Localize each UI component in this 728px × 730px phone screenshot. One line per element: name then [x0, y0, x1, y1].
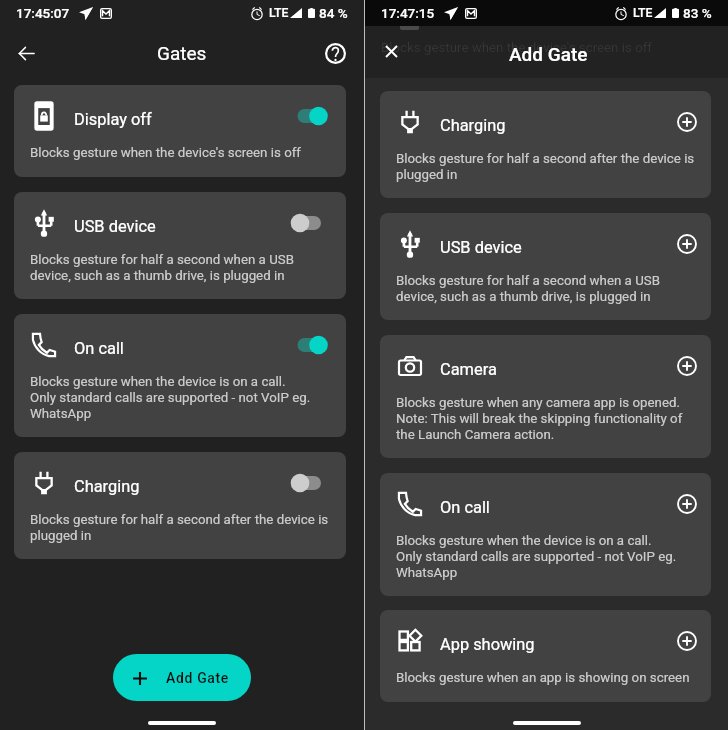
button[interactable]: USB device — [292, 213, 332, 233]
button[interactable]: Charging — [292, 473, 332, 493]
button[interactable]: Add Charging — [677, 112, 697, 132]
staticText: LTE — [633, 6, 653, 20]
button[interactable]: Add USB device — [677, 234, 697, 254]
staticText: the Launch Camera action. — [396, 427, 555, 443]
staticText: Only standard calls are supported - not … — [30, 390, 311, 406]
staticText: Blocks gesture when the device is on a c… — [396, 533, 652, 549]
button[interactable]: Back — [9, 36, 43, 70]
staticText: 84 % — [319, 5, 348, 21]
staticText: plugged in — [30, 528, 92, 544]
staticText: App showing — [440, 635, 535, 654]
button[interactable]: Add On call — [677, 494, 697, 514]
staticText: device, such as a thumb drive, is plugge… — [30, 268, 285, 284]
staticText: Blocks gesture for half a second after t… — [30, 512, 329, 528]
button[interactable]: App showing — [380, 610, 711, 702]
staticText: Blocks gesture when the device is on a c… — [30, 374, 286, 390]
staticText: USB device — [440, 238, 522, 257]
staticText: Gates — [157, 42, 207, 64]
button[interactable]: Display off — [14, 85, 346, 177]
staticText: plugged in — [396, 167, 458, 183]
button[interactable]: Add Gate — [113, 654, 251, 701]
button[interactable]: Close — [376, 36, 406, 66]
staticText: Blocks gesture for half a second when a … — [396, 273, 660, 289]
staticText: Charging — [74, 477, 140, 496]
button[interactable]: Charging — [14, 452, 346, 559]
staticText: Add Gate — [166, 670, 229, 686]
button[interactable]: Charging — [380, 91, 711, 198]
staticText: Blocks gesture when the device's screen … — [381, 40, 652, 56]
staticText: Display off — [74, 110, 152, 129]
staticText: 17:47:15 — [381, 5, 435, 21]
staticText: 17:45:07 — [16, 5, 70, 21]
button[interactable]: USB device — [380, 213, 711, 320]
staticText: Only standard calls are supported - not … — [396, 549, 677, 565]
staticText: WhatsApp — [396, 565, 458, 581]
staticText: Note: This will break the skipping funct… — [396, 411, 683, 427]
staticText: On call — [74, 339, 124, 358]
staticText: Blocks gesture when the device's screen … — [30, 145, 301, 161]
button[interactable]: Add Camera — [677, 356, 697, 376]
staticText: Charging — [440, 116, 506, 135]
button[interactable]: Add App showing — [677, 631, 697, 651]
staticText: WhatsApp — [30, 406, 92, 422]
staticText: Blocks gesture when any camera app is op… — [396, 395, 680, 411]
staticText: 83 % — [683, 5, 712, 21]
staticText: Blocks gesture when an app is showing on… — [396, 670, 690, 686]
staticText: USB device — [74, 217, 156, 236]
button[interactable]: On call — [14, 314, 346, 437]
button[interactable]: Help — [318, 36, 352, 70]
staticText: LTE — [269, 6, 289, 20]
staticText: Add Gate — [509, 43, 588, 65]
staticText: Blocks gesture for half a second when a … — [30, 252, 294, 268]
staticText: device, such as a thumb drive, is plugge… — [396, 289, 651, 305]
button[interactable]: On call — [380, 473, 711, 596]
button[interactable]: On call — [292, 335, 332, 355]
staticText: On call — [440, 498, 490, 517]
button[interactable]: USB device — [14, 192, 346, 299]
staticText: Blocks gesture for half a second after t… — [396, 151, 695, 167]
staticText: Camera — [440, 360, 497, 379]
button[interactable]: Display off — [292, 106, 332, 126]
button[interactable]: Camera — [380, 335, 711, 458]
